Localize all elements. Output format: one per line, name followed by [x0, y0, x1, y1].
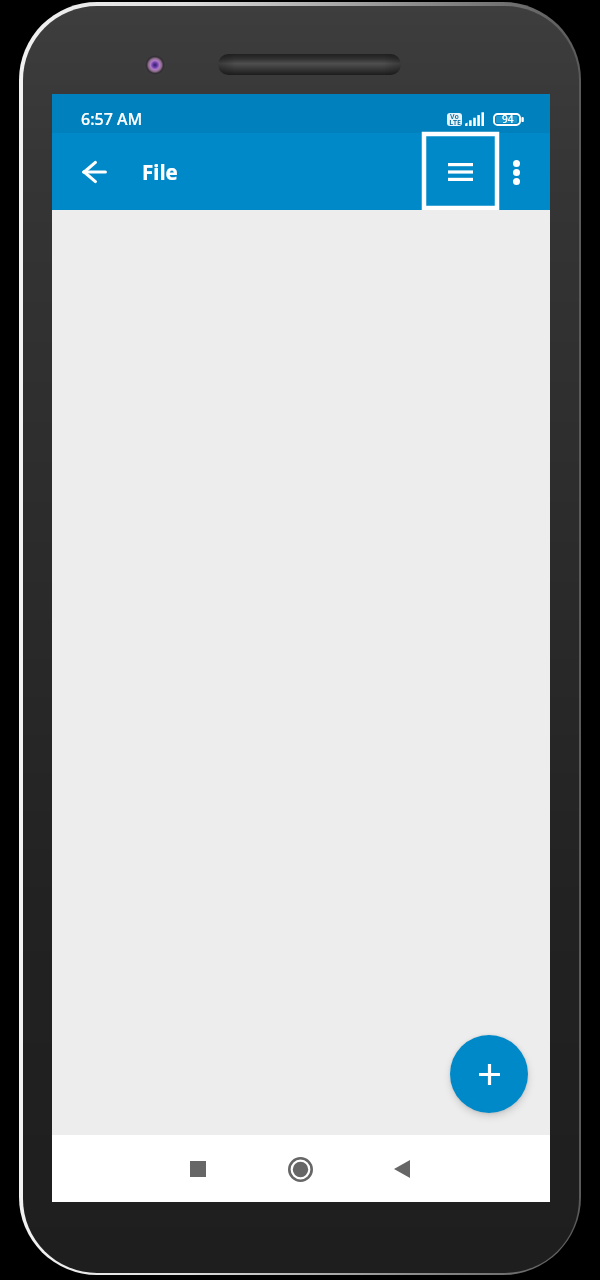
staticText: 94: [502, 112, 514, 126]
staticText: Vo: [450, 113, 459, 122]
staticText: 6:57 AM: [81, 108, 143, 130]
button[interactable]: Recents: [172, 1143, 224, 1195]
button[interactable]: Back: [376, 1143, 428, 1195]
staticText: LTE: [449, 118, 461, 126]
button[interactable]: Back: [72, 150, 116, 194]
button[interactable]: More options: [494, 150, 538, 194]
staticText: File: [142, 158, 178, 186]
button[interactable]: Home: [274, 1143, 326, 1195]
button[interactable]: Add: [450, 1035, 528, 1113]
button[interactable]: Menu: [424, 134, 497, 208]
